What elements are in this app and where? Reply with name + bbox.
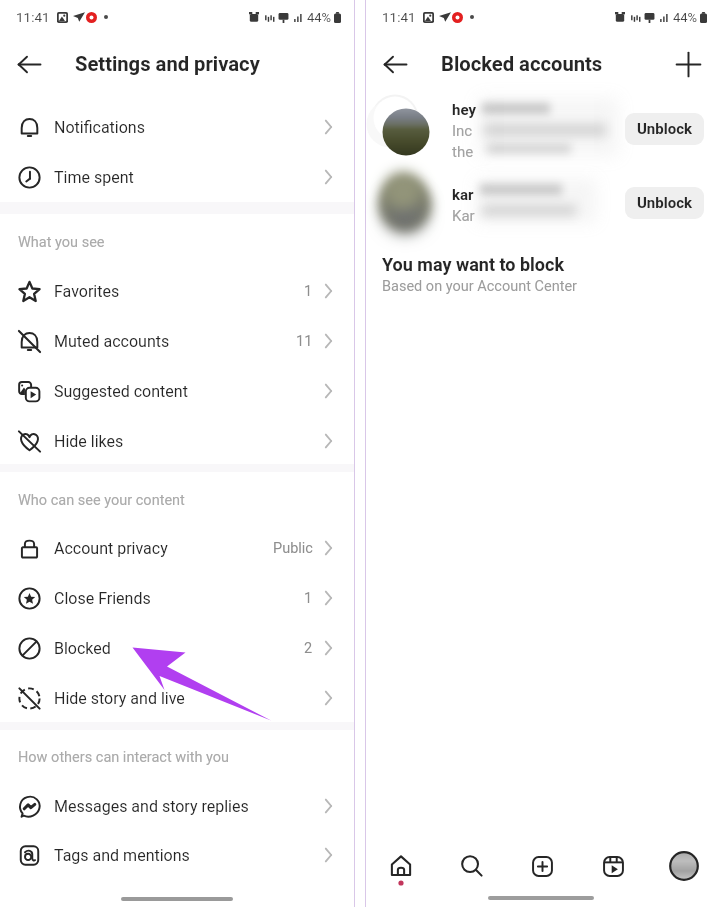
staticText: Tags and mentions — [54, 846, 190, 865]
staticText: Account privacy — [54, 539, 168, 558]
button[interactable]: Tags and mentions — [0, 830, 354, 880]
staticText: Kar — [452, 207, 475, 225]
button[interactable]: Reels — [590, 843, 636, 889]
button[interactable]: kar — [366, 167, 720, 241]
staticText: You may want to block — [382, 254, 565, 275]
staticText: Muted accounts — [54, 332, 170, 351]
button[interactable]: Account privacy — [0, 523, 354, 573]
staticText: 11:41 — [382, 9, 416, 25]
staticText: Unblock — [637, 194, 693, 212]
staticText: 2 — [304, 640, 313, 657]
button[interactable]: Notifications — [0, 102, 354, 152]
staticText: How others can interact with you — [18, 749, 230, 766]
button[interactable]: Time spent — [0, 152, 354, 202]
button[interactable]: hey — [366, 93, 720, 167]
staticText: 11:41 — [16, 9, 50, 25]
staticText: 1 — [304, 590, 313, 607]
button[interactable]: Hide likes — [0, 416, 354, 466]
staticText: Favorites — [54, 282, 120, 301]
button[interactable]: Search — [449, 843, 495, 889]
staticText: What you see — [18, 234, 105, 251]
staticText: Hide story and live — [54, 689, 185, 708]
button[interactable]: Add — [666, 42, 710, 86]
staticText: the — [452, 143, 474, 161]
button[interactable]: Hide story and live — [0, 673, 354, 723]
button[interactable]: Suggested content — [0, 366, 354, 416]
button[interactable]: Favorites — [0, 266, 354, 316]
staticText: Based on your Account Center — [382, 278, 577, 295]
staticText: Blocked accounts — [441, 52, 603, 76]
staticText: 44% — [673, 10, 698, 25]
staticText: Public — [273, 540, 313, 557]
staticText: Hide likes — [54, 432, 124, 451]
staticText: hey — [452, 101, 476, 119]
button[interactable]: Create — [519, 843, 565, 889]
button[interactable]: Close Friends — [0, 573, 354, 623]
staticText: Settings and privacy — [75, 52, 260, 76]
staticText: kar — [452, 186, 474, 204]
staticText: Close Friends — [54, 589, 151, 608]
staticText: Time spent — [54, 168, 134, 187]
button[interactable]: Back — [373, 42, 417, 86]
staticText: Suggested content — [54, 382, 188, 401]
button[interactable]: Muted accounts — [0, 316, 354, 366]
staticText: 1 — [304, 283, 313, 300]
button[interactable]: Back — [7, 42, 51, 86]
button[interactable]: Profile — [661, 843, 707, 889]
button[interactable]: Home — [378, 843, 424, 889]
staticText: Messages and story replies — [54, 797, 249, 816]
staticText: Inc — [452, 122, 473, 140]
staticText: 11 — [296, 333, 313, 350]
button[interactable]: Unblock — [625, 113, 704, 145]
staticText: Notifications — [54, 118, 145, 137]
staticText: Who can see your content — [18, 492, 185, 509]
staticText: Blocked — [54, 639, 111, 658]
staticText: Unblock — [637, 120, 693, 138]
button[interactable]: Unblock — [625, 187, 704, 219]
button[interactable]: Blocked — [0, 623, 354, 673]
staticText: 44% — [307, 10, 332, 25]
button[interactable]: Messages and story replies — [0, 781, 354, 831]
